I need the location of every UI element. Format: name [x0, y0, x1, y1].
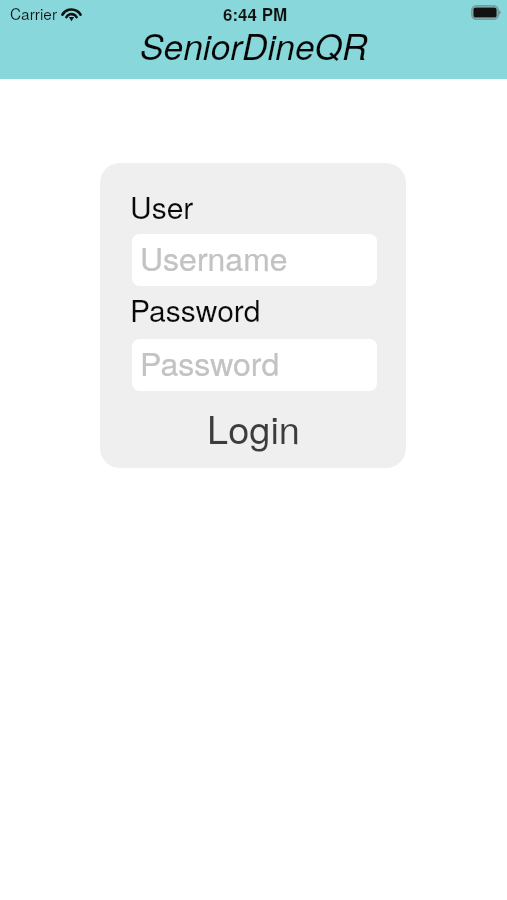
button[interactable]: Login — [131, 400, 375, 452]
staticText: Password — [130, 288, 261, 331]
button[interactable]: Password — [132, 339, 377, 391]
staticText: Password — [140, 339, 280, 385]
other: Wi-Fi signal — [62, 7, 81, 20]
staticText: Carrier — [10, 2, 58, 24]
staticText: Username — [140, 234, 288, 280]
staticText: User — [130, 185, 194, 228]
staticText: Login — [207, 400, 300, 452]
staticText: SeniorDineQR — [140, 20, 368, 70]
staticText: 6:44 PM — [223, 2, 288, 26]
button[interactable]: Username — [132, 234, 377, 286]
other: Battery full — [471, 5, 502, 21]
